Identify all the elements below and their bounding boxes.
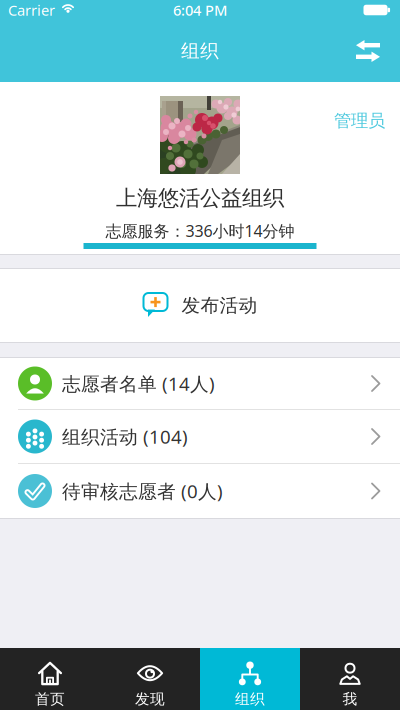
staticText: 发布活动 bbox=[181, 294, 257, 317]
staticText: 组织 bbox=[181, 39, 219, 62]
staticText: 首页 bbox=[35, 690, 65, 708]
staticText: 管理员 bbox=[334, 110, 385, 131]
button[interactable]: 切换组织 bbox=[342, 22, 400, 80]
staticText: 志愿服务：336小时14分钟 bbox=[105, 220, 294, 241]
button[interactable]: 组织 bbox=[200, 648, 300, 710]
button[interactable]: 发现 bbox=[100, 648, 200, 710]
staticText: 组织活动 (104) bbox=[62, 424, 188, 449]
button[interactable]: 发布活动 bbox=[0, 269, 400, 342]
staticText: 组织 bbox=[235, 690, 265, 708]
button[interactable]: 志愿者名单 (14人) bbox=[0, 358, 400, 409]
staticText: Carrier bbox=[8, 0, 55, 20]
staticText: 6:04 PM bbox=[173, 0, 227, 20]
staticText: 志愿者名单 (14人) bbox=[62, 371, 215, 396]
staticText: 我 bbox=[342, 690, 357, 708]
button[interactable]: 组织活动 (104) bbox=[0, 410, 400, 463]
staticText: 上海悠活公益组织 bbox=[116, 185, 284, 211]
button[interactable]: 待审核志愿者 (0人) bbox=[0, 464, 400, 518]
staticText: 待审核志愿者 (0人) bbox=[62, 479, 223, 503]
button[interactable]: 我 bbox=[300, 648, 400, 710]
button[interactable]: 首页 bbox=[0, 648, 100, 710]
staticText: 发现 bbox=[135, 690, 165, 708]
